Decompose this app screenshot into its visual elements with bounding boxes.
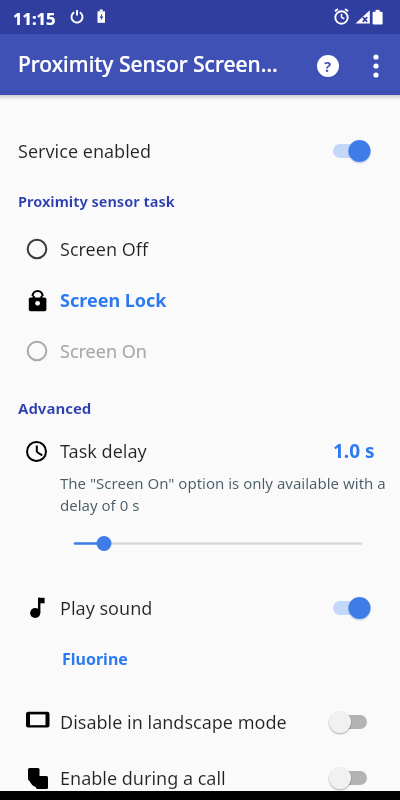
button[interactable]: Screen Lock [0, 275, 400, 325]
staticText: Screen On [60, 339, 147, 364]
staticText: Task delay [60, 439, 147, 464]
staticText: Screen Lock [60, 288, 167, 313]
staticText: Disable in landscape mode [60, 710, 287, 735]
button[interactable]: Screen On [0, 326, 400, 376]
staticText: Play sound [60, 596, 153, 621]
staticText: ? [324, 56, 332, 76]
button[interactable] [364, 49, 388, 83]
button[interactable]: Fluorine [0, 640, 400, 678]
staticText: Screen Off [60, 237, 149, 262]
staticText: Proximity sensor task [18, 191, 175, 211]
button[interactable]: Enable during a call [0, 753, 400, 800]
staticText: Enable during a call [60, 766, 226, 791]
staticText: Proximity Sensor Screen… [18, 50, 278, 79]
button[interactable]: Screen Off [0, 224, 400, 274]
staticText: Advanced [18, 398, 92, 418]
button[interactable]: Service enabled [0, 125, 400, 177]
staticText: 11:15 [13, 7, 56, 29]
button[interactable]: Disable in landscape mode [0, 697, 400, 747]
button[interactable] [0, 528, 400, 560]
staticText: Service enabled [18, 139, 152, 164]
button[interactable]: ? [315, 53, 341, 79]
staticText: 1.0 s [333, 438, 375, 464]
staticText: The "Screen On" option is only available… [60, 473, 386, 515]
staticText: Fluorine [62, 648, 128, 670]
button[interactable]: Task delay [0, 426, 400, 476]
button[interactable]: Play sound [0, 583, 400, 633]
